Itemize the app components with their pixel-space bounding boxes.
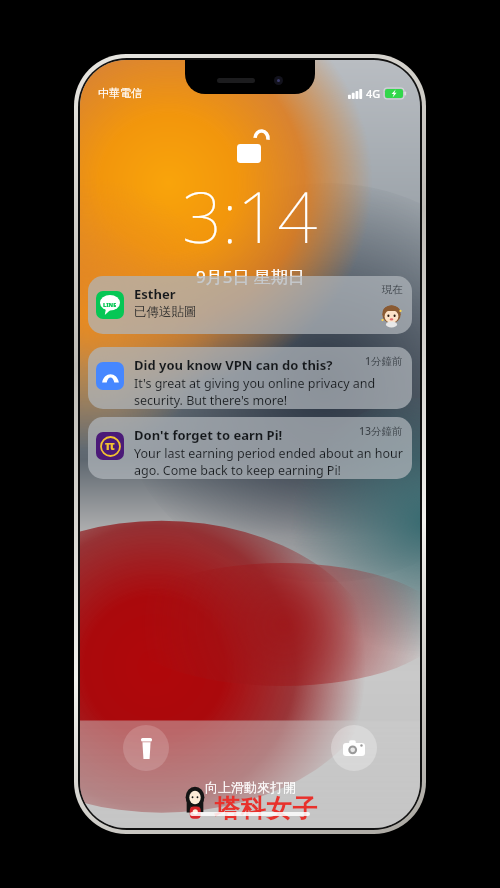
- button[interactable]: Camera: [331, 725, 377, 771]
- staticText: ago. Come back to keep earning Pi!: [134, 462, 341, 479]
- staticText: Esther: [134, 285, 176, 303]
- staticText: π: [105, 436, 115, 454]
- staticText: security. But there's more!: [134, 392, 288, 409]
- staticText: Did you know VPN can do this?: [134, 356, 333, 374]
- button[interactable]: Flashlight: [123, 725, 169, 771]
- staticText: 向上滑動來打開: [205, 779, 296, 795]
- staticText: Your last earning period ended about an …: [134, 445, 403, 462]
- staticText: 13分鐘前: [359, 424, 403, 438]
- staticText: 9月5日 星期日: [196, 265, 305, 288]
- button[interactable]: π: [88, 417, 412, 479]
- staticText: LINE: [103, 301, 117, 308]
- button[interactable]: LINE: [88, 276, 412, 334]
- button[interactable]: Did you know VPN can do this?: [88, 347, 412, 409]
- staticText: Don't forget to earn Pi!: [134, 426, 283, 444]
- staticText: 已傳送貼圖: [134, 304, 197, 320]
- staticText: 3:14: [182, 168, 318, 263]
- staticText: 塔科女子: [214, 793, 318, 824]
- staticText: It's great at giving you online privacy …: [134, 375, 376, 392]
- staticText: 中華電信: [98, 86, 142, 100]
- staticText: 1分鐘前: [365, 354, 403, 368]
- staticText: 現在: [382, 283, 403, 296]
- staticText: 4G: [366, 86, 381, 101]
